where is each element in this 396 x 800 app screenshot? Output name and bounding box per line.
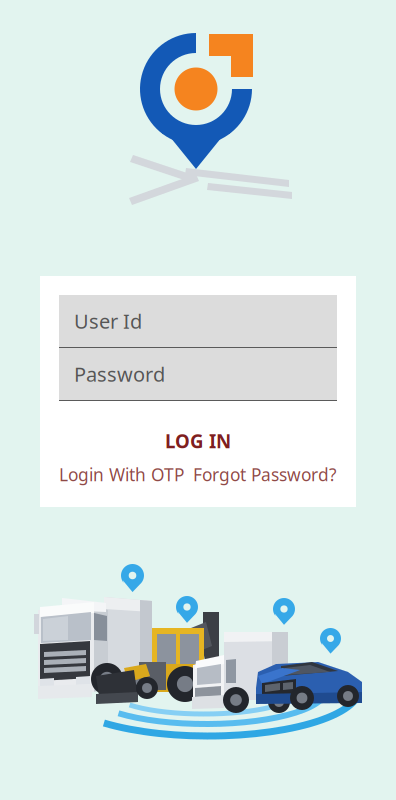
staticText: Forgot Password? xyxy=(193,463,337,486)
button[interactable]: Login With OTP xyxy=(59,463,184,486)
staticText: Login With OTP xyxy=(59,463,184,486)
button[interactable]: Password xyxy=(59,348,337,401)
button[interactable]: Forgot Password? xyxy=(193,463,337,486)
button[interactable]: LOG IN xyxy=(155,421,241,461)
button[interactable]: User Id xyxy=(59,295,337,348)
staticText: User Id xyxy=(74,308,142,334)
staticText: Password xyxy=(74,361,165,387)
staticText: LOG IN xyxy=(165,429,231,453)
